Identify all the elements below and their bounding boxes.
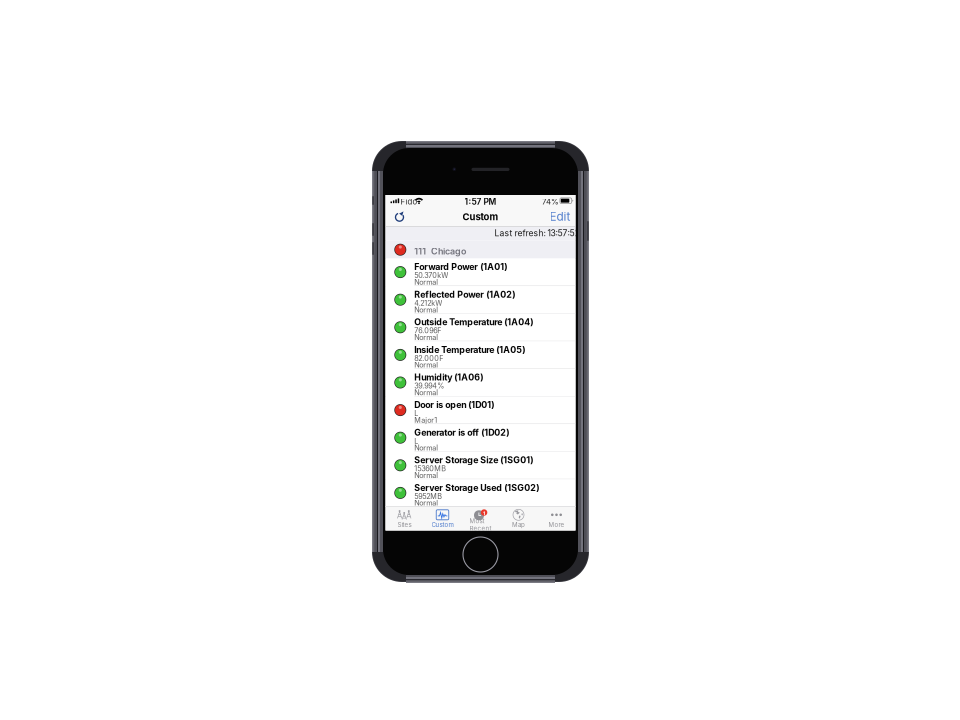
staticText: Server Storage Size (1SG01)	[414, 455, 533, 465]
staticText: Outside Temperature (1A04)	[414, 317, 533, 327]
button[interactable]: Map	[499, 506, 537, 530]
staticText: 4.212kW	[414, 299, 442, 307]
staticText: L	[414, 437, 418, 445]
staticText: Inside Temperature (1A05)	[414, 344, 525, 355]
button[interactable]: Outside Temperature (1A04)	[385, 314, 575, 341]
staticText: L	[414, 409, 418, 418]
staticText: Normal	[414, 388, 438, 397]
button[interactable]: More	[537, 506, 575, 530]
staticText: 111	[414, 246, 426, 257]
staticText: Last refresh: 13:57:52.3	[494, 228, 586, 238]
staticText: 15360MB	[414, 464, 446, 473]
staticText: Normal	[414, 278, 438, 286]
button[interactable]: Sites	[385, 506, 423, 530]
staticText: Door is open (1D01)	[414, 400, 494, 410]
staticText: 76.096F	[414, 326, 441, 335]
staticText: Map	[512, 521, 525, 528]
staticText: Normal	[414, 499, 438, 507]
staticText: Most Recent	[469, 517, 491, 532]
staticText: 1:57 PM	[464, 197, 496, 207]
button[interactable]: Server Storage Size (1SG01)	[385, 452, 575, 479]
staticText: Reflected Power (1A02)	[414, 289, 515, 300]
staticText: Normal	[414, 361, 438, 369]
staticText: Server Storage Used (1SG02)	[414, 482, 539, 493]
staticText: 39.994%	[414, 381, 444, 390]
staticText: Normal	[414, 471, 438, 480]
staticText: Edit	[549, 209, 570, 224]
staticText: 82.000F	[414, 354, 443, 363]
staticText: Fido	[400, 197, 417, 206]
staticText: 5952MB	[414, 492, 442, 501]
staticText: 1	[483, 510, 485, 517]
button[interactable]: Server Storage Used (1SG02)	[385, 479, 575, 507]
staticText: Normal	[414, 305, 438, 314]
button[interactable]: Generator is off (1D02)	[385, 424, 575, 452]
staticText: Major1	[414, 416, 437, 424]
staticText: Sites	[397, 521, 411, 528]
button[interactable]: Reflected Power (1A02)	[385, 286, 575, 314]
button[interactable]: Inside Temperature (1A05)	[385, 341, 575, 369]
button[interactable]: Forward Power (1A01)	[385, 258, 575, 286]
staticText: Custom	[431, 521, 453, 528]
staticText: 74%	[542, 197, 559, 206]
staticText: Chicago	[431, 246, 466, 257]
button[interactable]: Custom	[423, 506, 461, 530]
button[interactable]: Humidity (1A06)	[385, 369, 575, 396]
staticText: Custom	[462, 211, 498, 222]
staticText: 50.370kW	[414, 271, 448, 280]
button[interactable]: Edit	[544, 206, 570, 227]
staticText: Humidity (1A06)	[414, 372, 483, 383]
button[interactable]: Refresh	[388, 206, 410, 227]
staticText: Generator is off (1D02)	[414, 427, 509, 438]
staticText: Forward Power (1A01)	[414, 262, 507, 272]
button[interactable]: 1	[461, 506, 499, 530]
button[interactable]: Door is open (1D01)	[385, 396, 575, 424]
staticText: More	[548, 521, 564, 528]
staticText: Normal	[414, 333, 438, 342]
staticText: Normal	[414, 443, 438, 452]
